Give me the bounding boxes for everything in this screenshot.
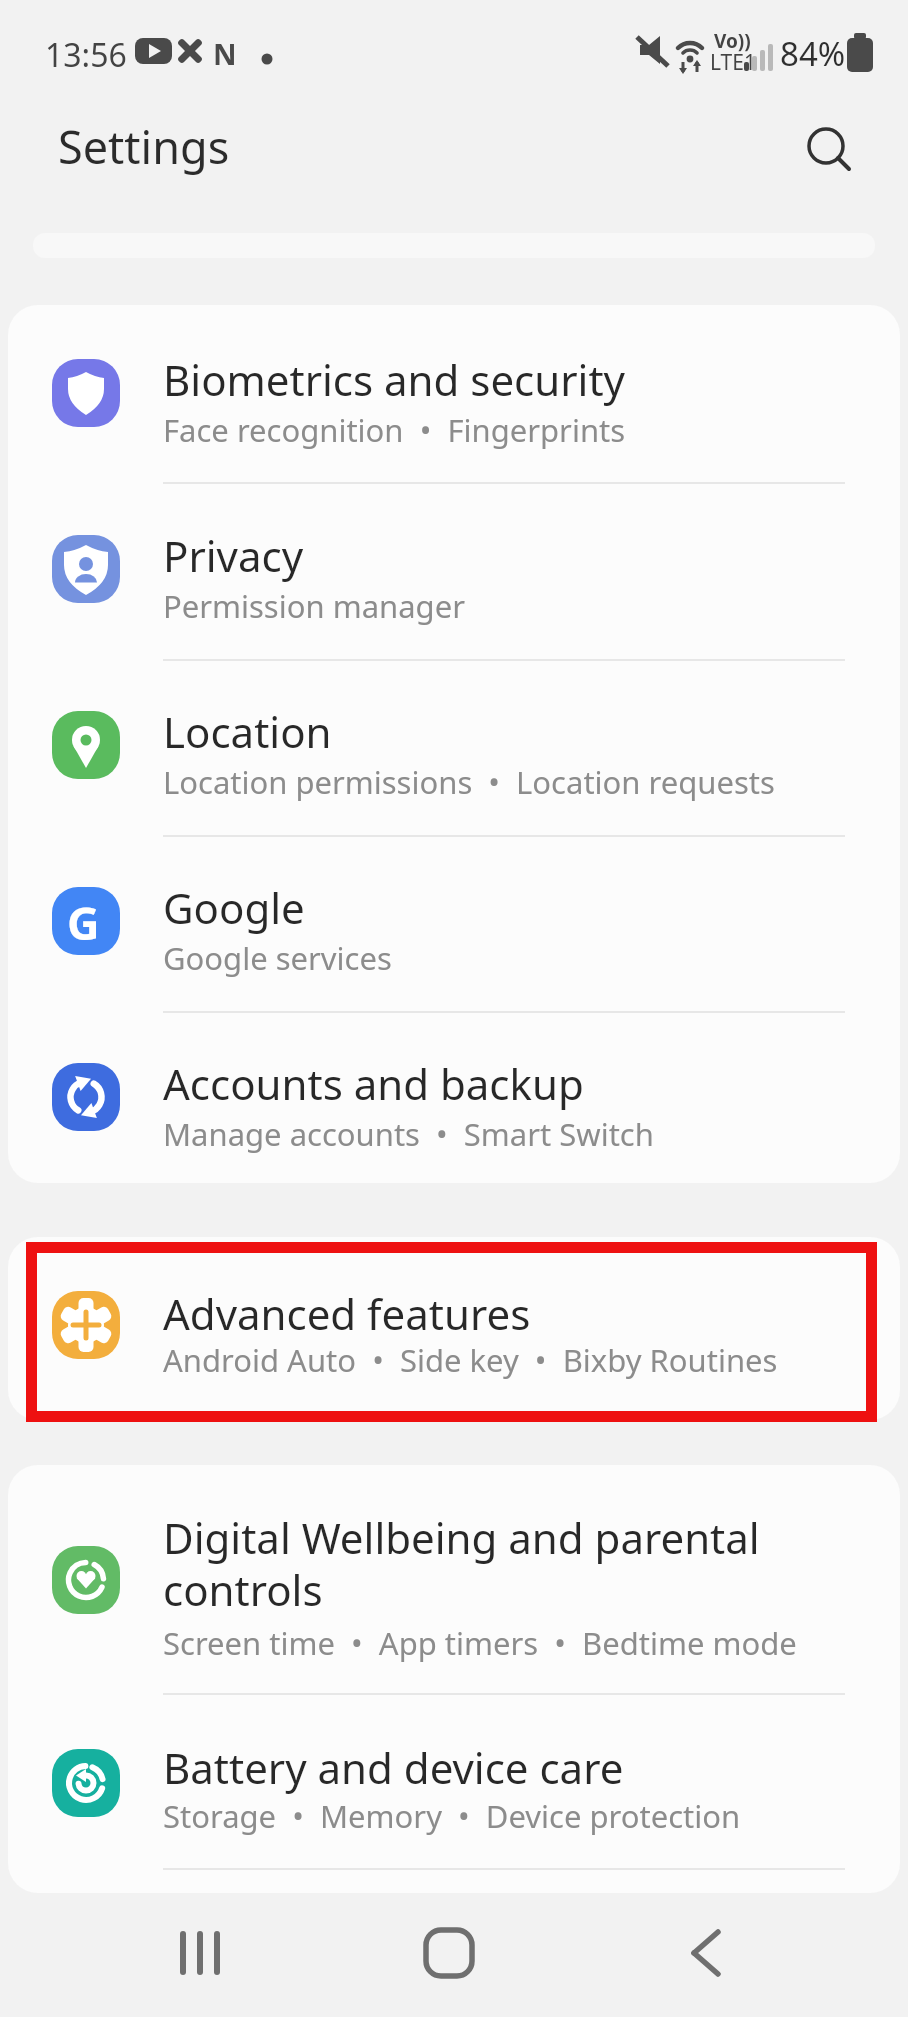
button[interactable]: Location — [8, 657, 900, 833]
staticText: G — [67, 892, 100, 953]
staticText: Google services — [163, 937, 392, 979]
button[interactable]: G — [8, 833, 900, 1009]
staticText: Accounts and backup — [163, 1055, 584, 1112]
button[interactable] — [156, 1913, 236, 1993]
button[interactable]: Privacy — [8, 481, 900, 657]
staticText: 13:56 — [45, 33, 127, 77]
button[interactable] — [409, 1913, 489, 1993]
staticText: Location — [163, 703, 332, 760]
staticText: Permission manager — [163, 585, 465, 627]
staticText: 84% — [780, 31, 846, 76]
button[interactable]: Accounts and backup — [8, 1009, 900, 1185]
staticText: Android Auto • Side key • Bixby Routines — [163, 1339, 778, 1381]
staticText: Settings — [58, 116, 230, 177]
staticText: Google — [163, 879, 305, 936]
staticText: Screen time • App timers • Bedtime mode — [163, 1622, 797, 1664]
staticText: Manage accounts • Smart Switch — [163, 1113, 654, 1155]
staticText: Privacy — [163, 527, 304, 584]
button[interactable]: Battery and device care — [8, 1695, 900, 1871]
button[interactable]: Biometrics and security — [8, 305, 900, 481]
staticText: Location permissions • Location requests — [163, 761, 775, 803]
button[interactable]: Advanced features — [8, 1237, 900, 1413]
staticText: Storage • Memory • Device protection — [163, 1795, 741, 1837]
staticText: N — [213, 34, 237, 73]
staticText: Vo)) — [714, 28, 751, 54]
staticText: Digital Wellbeing and parental controls — [163, 1509, 760, 1618]
button[interactable] — [798, 118, 862, 182]
staticText: Advanced features — [163, 1285, 531, 1342]
staticText: LTE1 — [710, 48, 756, 77]
button[interactable]: Digital Wellbeing and parental controls — [8, 1465, 900, 1695]
button[interactable] — [665, 1913, 745, 1993]
staticText: Face recognition • Fingerprints — [163, 409, 626, 451]
staticText: Battery and device care — [163, 1739, 624, 1796]
staticText: Biometrics and security — [163, 351, 626, 408]
